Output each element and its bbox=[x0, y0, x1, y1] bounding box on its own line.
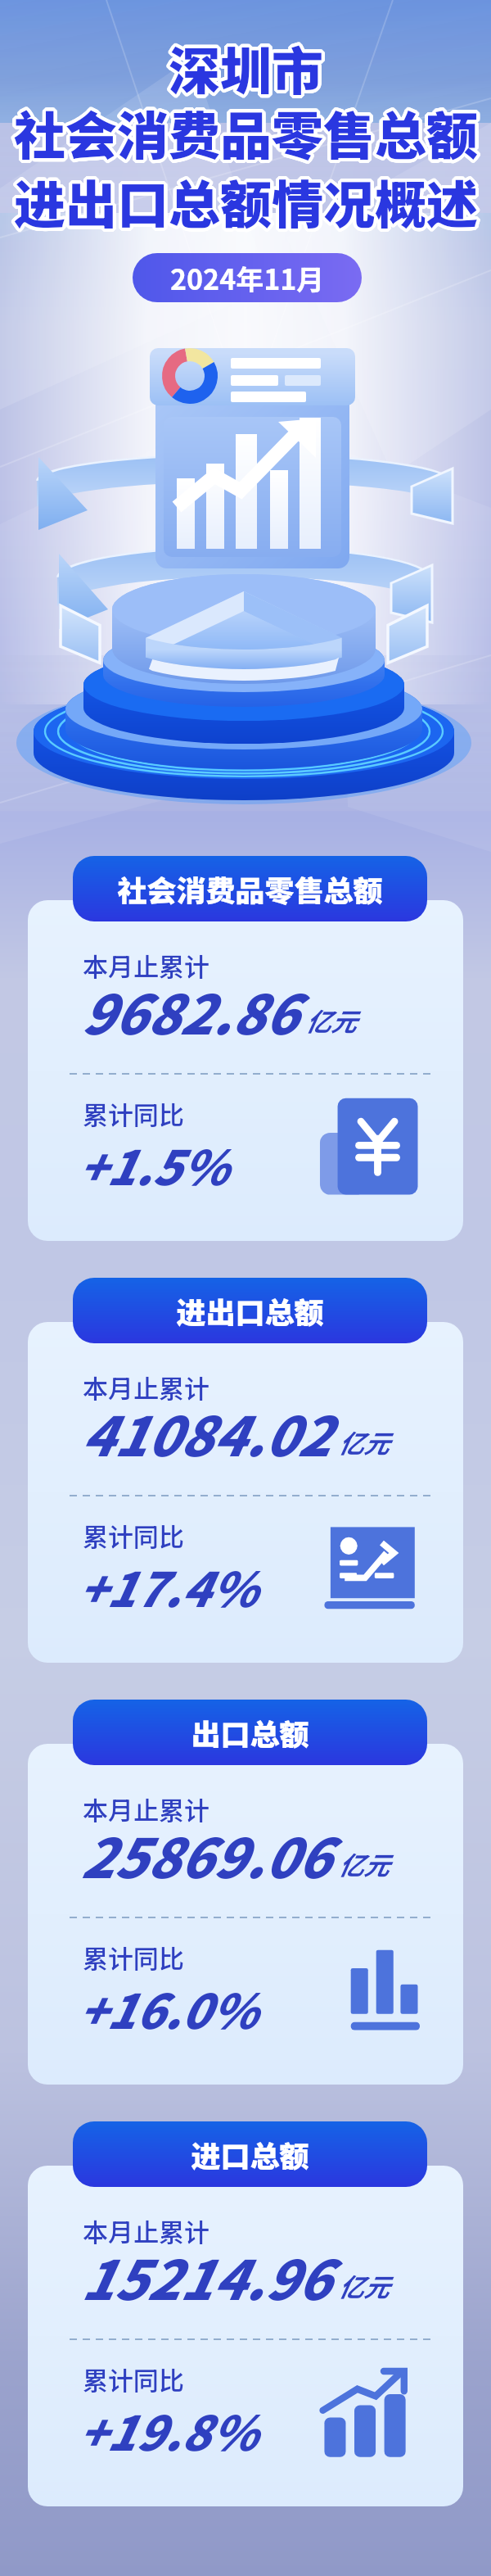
button[interactable]: 本月止累计 bbox=[28, 900, 463, 1241]
staticText: 深圳市 bbox=[169, 30, 324, 105]
staticText: 进出口总额情况概述 bbox=[11, 162, 475, 237]
staticText: 进出口总额情况概述 bbox=[13, 165, 477, 239]
staticText: 深圳市 bbox=[170, 30, 325, 105]
staticText: 进出口总额 bbox=[176, 1289, 324, 1332]
staticText: 进出口总额情况概述 bbox=[14, 165, 478, 239]
staticText: 深圳市 bbox=[170, 29, 325, 104]
staticText: 进出口总额情况概述 bbox=[16, 162, 480, 237]
staticText: 社会消费品零售总额 bbox=[16, 93, 480, 168]
staticText: 深圳市 bbox=[169, 28, 323, 102]
staticText: 进出口总额情况概述 bbox=[14, 162, 478, 237]
button[interactable]: 本月止累计 bbox=[28, 2166, 463, 2506]
staticText: 深圳市 bbox=[166, 29, 321, 104]
staticText: 深圳市 bbox=[167, 30, 322, 105]
staticText: 累计同比 bbox=[83, 1939, 184, 1976]
staticText: 深圳市 bbox=[170, 29, 325, 103]
button[interactable]: 本月止累计 bbox=[28, 1744, 463, 2085]
staticText: 社会消费品零售总额 bbox=[15, 96, 479, 170]
staticText: 社会消费品零售总额 bbox=[117, 867, 383, 910]
staticText: 深圳市 bbox=[166, 31, 321, 106]
staticText: 社会消费品零售总额 bbox=[12, 94, 476, 169]
staticText: 进出口总额情况概述 bbox=[11, 163, 475, 238]
staticText: 社会消费品零售总额 bbox=[17, 96, 481, 170]
staticText: 社会消费品零售总额 bbox=[15, 97, 479, 171]
staticText: 本月止累计 bbox=[83, 947, 209, 984]
staticText: 社会消费品零售总额 bbox=[13, 94, 477, 169]
staticText: 社会消费品零售总额 bbox=[15, 93, 479, 167]
staticText: 深圳市 bbox=[167, 33, 322, 107]
staticText: 深圳市 bbox=[167, 32, 322, 106]
staticText: 进出口总额情况概述 bbox=[15, 163, 479, 238]
staticText: 进出口总额情况概述 bbox=[13, 161, 477, 235]
staticText: 进出口总额情况概述 bbox=[12, 165, 476, 239]
staticText: 25869.06 bbox=[80, 1815, 330, 1894]
staticText: 进出口总额情况概述 bbox=[14, 167, 478, 242]
staticText: 进出口总额情况概述 bbox=[16, 165, 480, 239]
staticText: 亿元 bbox=[338, 1424, 389, 1460]
button[interactable]: 进出口总额 bbox=[73, 1278, 427, 1343]
staticText: 社会消费品零售总额 bbox=[15, 97, 479, 172]
staticText: 深圳市 bbox=[167, 31, 322, 106]
staticText: 社会消费品零售总额 bbox=[13, 95, 477, 170]
staticText: 社会消费品零售总额 bbox=[12, 93, 476, 167]
staticText: 深圳市 bbox=[169, 31, 324, 106]
staticText: 进出口总额情况概述 bbox=[15, 165, 479, 240]
staticText: 进出口总额情况概述 bbox=[17, 164, 481, 238]
staticText: 进出口总额情况概述 bbox=[15, 162, 479, 237]
staticText: 社会消费品零售总额 bbox=[14, 94, 478, 169]
staticText: 社会消费品零售总额 bbox=[13, 92, 477, 166]
staticText: 社会消费品零售总额 bbox=[14, 98, 478, 173]
staticText: 亿元 bbox=[338, 2267, 389, 2304]
button[interactable]: 本月止累计 bbox=[28, 1322, 463, 1663]
staticText: 进出口总额情况概述 bbox=[13, 166, 477, 241]
button[interactable]: 社会消费品零售总额 bbox=[73, 856, 427, 921]
staticText: 社会消费品零售总额 bbox=[11, 94, 475, 169]
staticText: 深圳市 bbox=[172, 29, 327, 104]
staticText: 进出口总额情况概述 bbox=[14, 164, 478, 238]
button[interactable]: 2024年11月 bbox=[133, 253, 362, 302]
staticText: 进出口总额情况概述 bbox=[13, 167, 477, 242]
staticText: 社会消费品零售总额 bbox=[16, 93, 480, 167]
staticText: 进出口总额情况概述 bbox=[16, 162, 480, 237]
staticText: 深圳市 bbox=[165, 31, 320, 106]
staticText: 社会消费品零售总额 bbox=[12, 97, 476, 172]
staticText: 社会消费品零售总额 bbox=[16, 96, 480, 170]
staticText: 深圳市 bbox=[169, 27, 323, 102]
staticText: 深圳市 bbox=[169, 33, 324, 107]
staticText: 深圳市 bbox=[171, 30, 326, 105]
staticText: 深圳市 bbox=[166, 30, 321, 105]
staticText: 深圳市 bbox=[169, 33, 323, 107]
staticText: 社会消费品零售总额 bbox=[11, 95, 475, 170]
staticText: 进出口总额情况概述 bbox=[14, 164, 478, 238]
staticText: 社会消费品零售总额 bbox=[16, 94, 480, 169]
staticText: 社会消费品零售总额 bbox=[17, 95, 481, 170]
staticText: 社会消费品零售总额 bbox=[13, 97, 477, 172]
staticText: 进出口总额情况概述 bbox=[13, 161, 477, 236]
staticText: 深圳市 bbox=[165, 29, 320, 104]
staticText: 深圳市 bbox=[168, 31, 322, 106]
staticText: 社会消费品零售总额 bbox=[14, 97, 478, 172]
staticText: 深圳市 bbox=[166, 32, 321, 106]
staticText: 深圳市 bbox=[171, 32, 326, 106]
staticText: 社会消费品零售总额 bbox=[16, 95, 480, 170]
button[interactable]: 出口总额 bbox=[73, 1700, 427, 1765]
button[interactable]: 进口总额 bbox=[73, 2121, 427, 2187]
staticText: 亿元 bbox=[338, 1845, 389, 1882]
staticText: 进出口总额情况概述 bbox=[13, 165, 477, 240]
staticText: 深圳市 bbox=[168, 32, 322, 106]
staticText: 社会消费品零售总额 bbox=[12, 93, 476, 168]
staticText: 进出口总额情况概述 bbox=[15, 167, 479, 242]
staticText: 深圳市 bbox=[171, 29, 326, 103]
staticText: 社会消费品零售总额 bbox=[13, 93, 477, 168]
staticText: 进出口总额情况概述 bbox=[13, 163, 477, 238]
staticText: 深圳市 bbox=[168, 30, 322, 105]
staticText: 社会消费品零售总额 bbox=[15, 93, 479, 168]
staticText: 15214.96 bbox=[80, 2237, 330, 2316]
staticText: 进出口总额情况概述 bbox=[12, 163, 476, 238]
staticText: 社会消费品零售总额 bbox=[15, 94, 479, 169]
staticText: 深圳市 bbox=[172, 31, 327, 106]
staticText: 深圳市 bbox=[169, 31, 323, 106]
staticText: 社会消费品零售总额 bbox=[13, 98, 477, 173]
staticText: 社会消费品零售总额 bbox=[14, 97, 478, 171]
staticText: 深圳市 bbox=[171, 31, 326, 106]
